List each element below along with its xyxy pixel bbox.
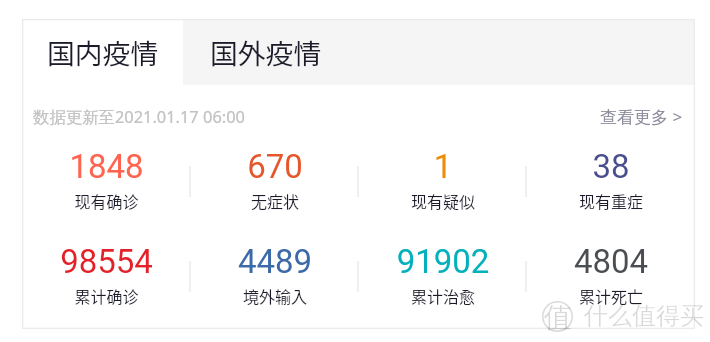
button[interactable]: 4804 [527,242,695,310]
button[interactable]: 670 [191,147,359,215]
staticText: 累计确诊 [22,284,191,307]
button[interactable]: 国内疫情 [22,19,183,85]
staticText: 数据更新至2021.01.17 06:00 [33,105,245,127]
staticText: 值 [544,300,572,331]
staticText: 查看更多 > [600,105,683,128]
staticText: 1 [359,147,527,186]
staticText: 670 [191,147,359,186]
staticText: 98554 [22,242,191,281]
button[interactable]: 91902 [359,242,527,310]
staticText: 境外输入 [191,284,359,307]
staticText: 现有确诊 [22,189,191,212]
button[interactable]: 1848 [22,147,191,215]
button[interactable]: 4489 [191,242,359,310]
staticText: 国内疫情 [47,32,159,72]
staticText: 什么值得买 [584,301,704,331]
staticText: 4489 [191,242,359,281]
button[interactable]: 国外疫情 [183,19,695,85]
staticText: 累计治愈 [359,284,527,307]
staticText: 现有疑似 [359,189,527,212]
button[interactable]: 查看更多 > [600,105,683,128]
staticText: 累计死亡 [527,284,695,307]
button[interactable]: 98554 [22,242,191,310]
staticText: 4804 [527,242,695,281]
button[interactable]: 1 [359,147,527,215]
staticText: 91902 [359,242,527,281]
staticText: 无症状 [191,189,359,212]
staticText: 1848 [22,147,191,186]
staticText: 38 [527,147,695,186]
staticText: 国外疫情 [210,32,322,72]
staticText: 现有重症 [527,189,695,212]
button[interactable]: 38 [527,147,695,215]
